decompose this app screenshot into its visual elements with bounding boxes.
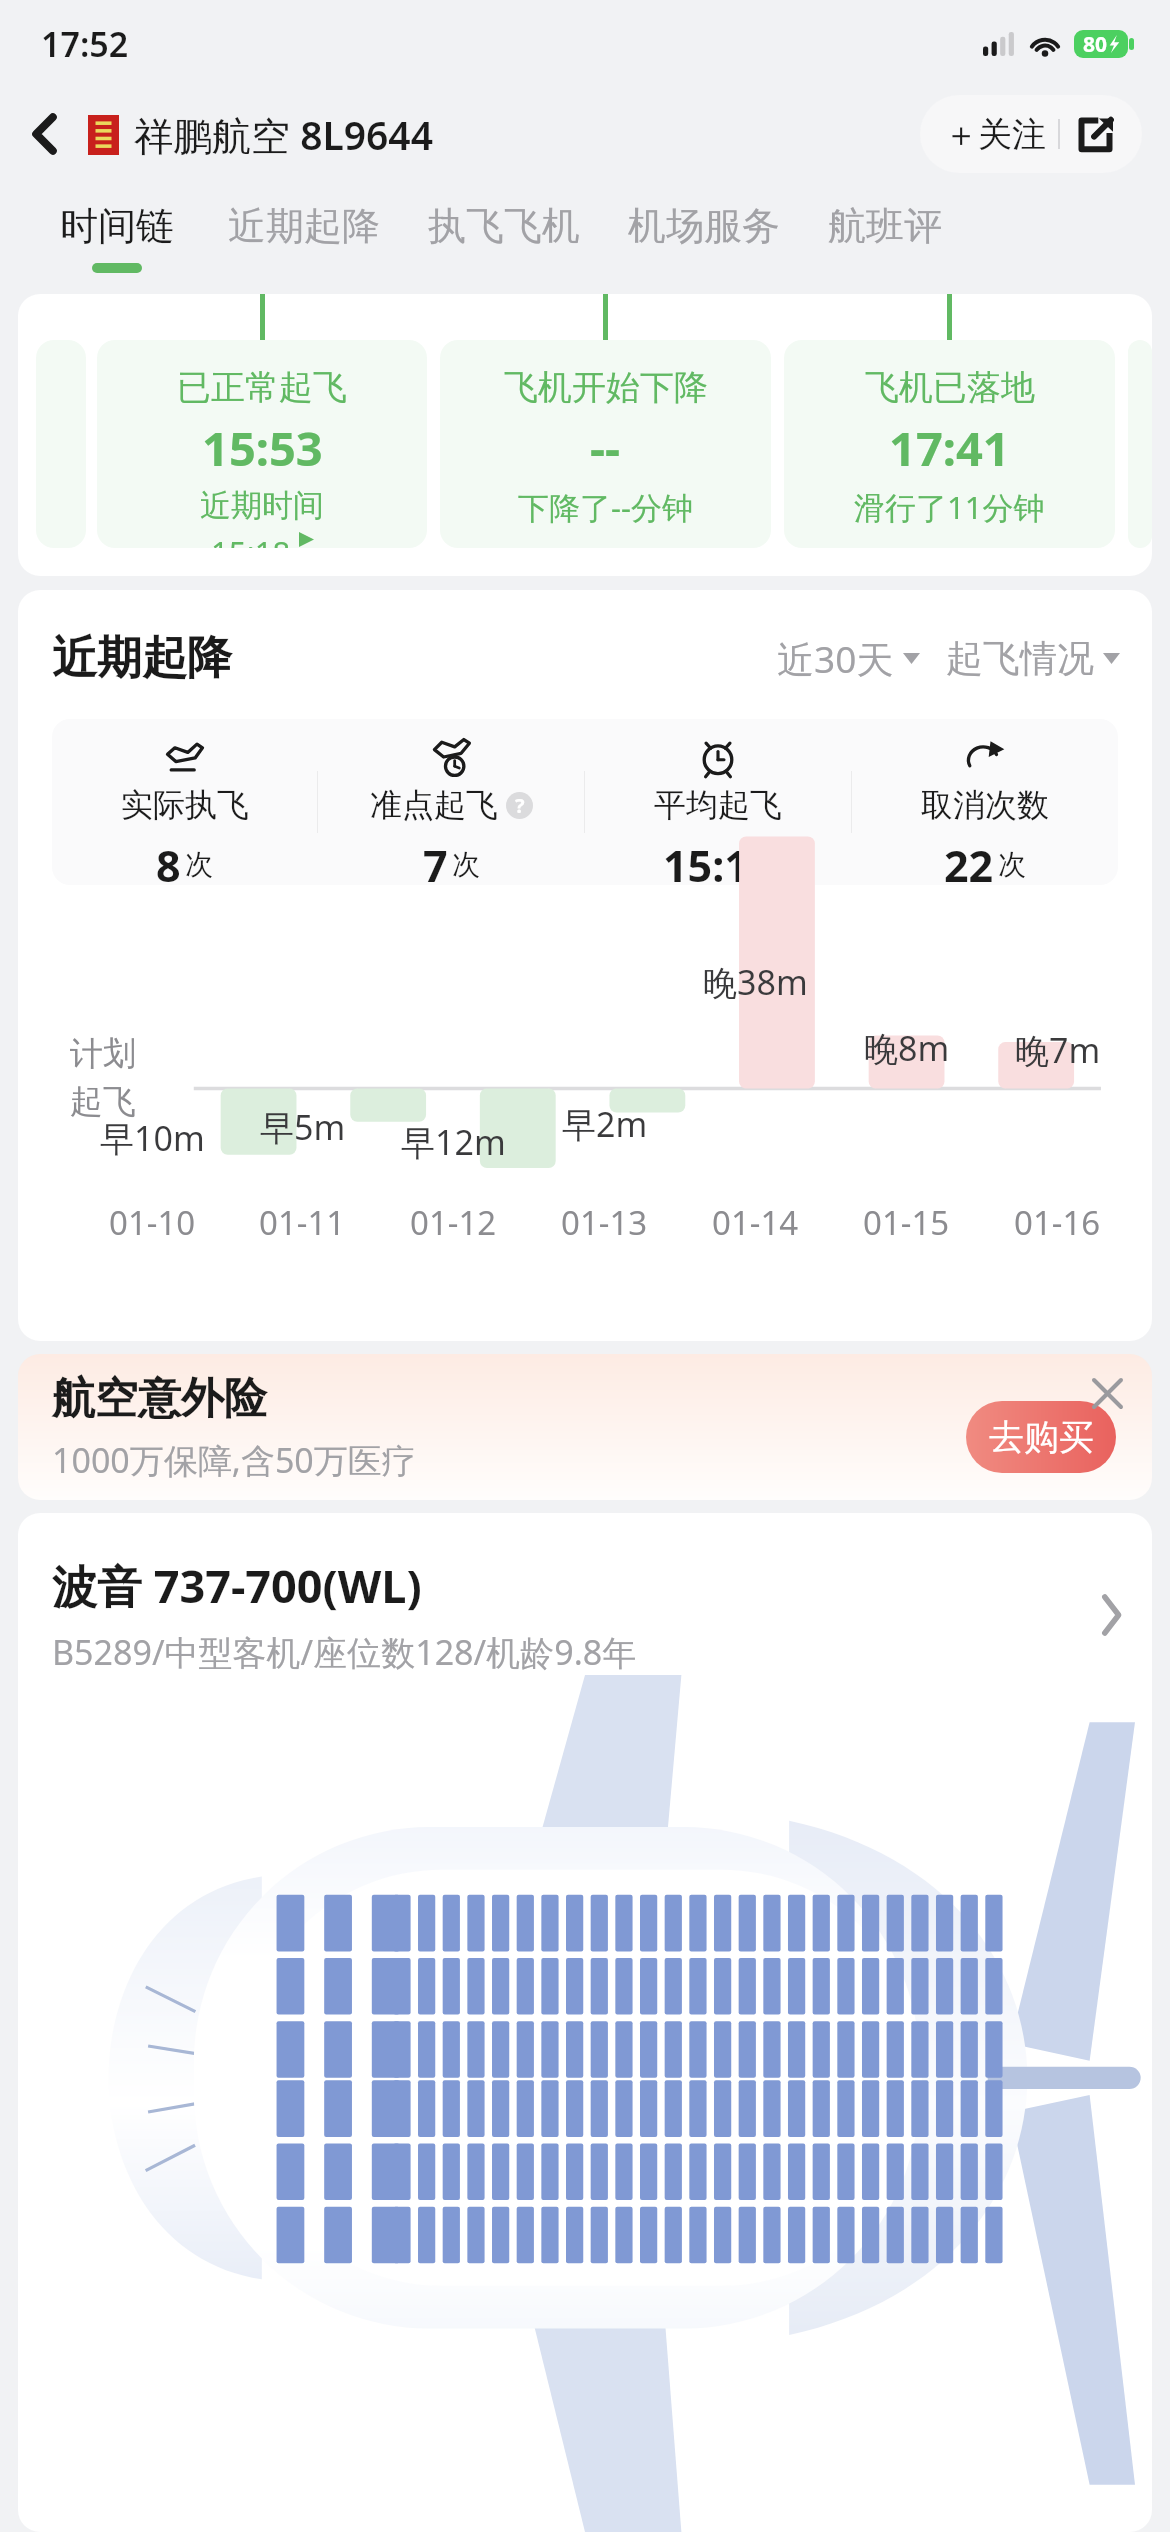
staticText: 近期时间 <box>200 486 324 525</box>
staticText: 晚8m <box>864 1025 950 1071</box>
staticText: 去购买 <box>989 1415 1094 1459</box>
staticText: 01-15 <box>863 1200 950 1245</box>
staticText: B5289/中型客机/座位数128/机龄9.8年 <box>52 1629 637 1675</box>
button[interactable]: 去购买 <box>966 1401 1116 1473</box>
button[interactable]: 取消次数 <box>852 719 1118 885</box>
staticText: 航班评 <box>828 202 942 250</box>
staticText: 15:18 <box>211 531 291 548</box>
staticText: 执飞飞机 <box>428 202 580 250</box>
staticText: 航空意外险 <box>52 1372 267 1426</box>
staticText: 时间链 <box>60 202 174 250</box>
staticText: 滑行了11分钟 <box>854 486 1045 528</box>
staticText: 起飞 <box>70 1081 136 1123</box>
staticText: 早5m <box>260 1104 346 1150</box>
button[interactable]: ＋关注 <box>944 113 1046 156</box>
button[interactable]: 起飞情况 <box>946 635 1120 682</box>
staticText: 早12m <box>401 1119 506 1165</box>
staticText: 8 <box>156 836 181 885</box>
button[interactable]: 近期起降 <box>228 180 380 273</box>
staticText: 80 <box>1083 30 1108 58</box>
button[interactable]: 飞机已落地 <box>784 294 1115 576</box>
button[interactable]: 时间链 <box>60 180 174 273</box>
button[interactable]: 飞机开始下降 <box>440 294 771 576</box>
staticText: 近期起降 <box>52 630 232 687</box>
staticText: 晚38m <box>703 959 808 1005</box>
staticText: -- <box>590 416 621 480</box>
staticText: ＋关注 <box>944 113 1046 156</box>
staticText: 机场服务 <box>628 202 780 250</box>
staticText: 平均起飞 <box>654 785 782 825</box>
button[interactable]: 航空意外险 <box>18 1354 1152 1500</box>
button[interactable]: Back <box>12 101 78 167</box>
staticText: 01-14 <box>712 1200 799 1245</box>
staticText: 01-13 <box>561 1200 648 1245</box>
staticText: 01-12 <box>410 1200 497 1245</box>
staticText: 15:17 <box>663 836 774 885</box>
button[interactable]: 波音 737-700(WL) <box>18 1513 1152 1675</box>
button[interactable]: 执飞飞机 <box>428 180 580 273</box>
staticText: 7 <box>423 836 448 885</box>
staticText: 1000万保障,含50万医疗 <box>52 1437 416 1483</box>
staticText: 准点起飞 <box>370 785 498 825</box>
button[interactable]: 准点起飞 <box>318 719 584 885</box>
staticText: 已正常起飞 <box>177 366 347 409</box>
staticText: 计划 <box>70 1033 136 1075</box>
staticText: 飞机开始下降 <box>504 366 708 409</box>
staticText: 晚7m <box>1015 1027 1101 1073</box>
staticText: 次 <box>185 847 213 882</box>
staticText: 17:41 <box>889 416 1010 480</box>
staticText: 01-11 <box>259 1200 346 1245</box>
staticText: 取消次数 <box>921 785 1049 825</box>
staticText: ? <box>515 792 525 819</box>
staticText: 起飞情况 <box>946 635 1094 682</box>
button[interactable]: Share <box>1072 111 1118 157</box>
button[interactable]: 平均起飞 <box>585 719 851 885</box>
button[interactable]: 航班评 <box>828 180 942 273</box>
staticText: 早2m <box>562 1101 648 1147</box>
button[interactable]: 近30天 <box>777 633 920 684</box>
staticText: 17:52 <box>41 21 129 67</box>
staticText: 22 <box>944 836 994 885</box>
staticText: 次 <box>998 847 1026 882</box>
button[interactable]: 机场服务 <box>628 180 780 273</box>
staticText: 波音 737-700(WL) <box>52 1555 422 1616</box>
staticText: 飞机已落地 <box>865 366 1035 409</box>
button[interactable]: 实际执飞 <box>52 719 317 885</box>
staticText: 01-10 <box>109 1200 196 1245</box>
button[interactable]: 已正常起飞 <box>97 294 427 576</box>
staticText: 早10m <box>100 1115 205 1161</box>
staticText: 下降了--分钟 <box>518 486 693 528</box>
button[interactable]: Close <box>1078 1364 1136 1422</box>
staticText: 15:53 <box>202 416 323 480</box>
staticText: 实际执飞 <box>121 785 249 825</box>
staticText: 01-16 <box>1014 1200 1101 1245</box>
staticText: 祥鹏航空 8L9644 <box>134 108 433 161</box>
staticText: 次 <box>452 847 480 882</box>
staticText: 近30天 <box>777 633 894 684</box>
staticText: 近期起降 <box>228 202 380 250</box>
